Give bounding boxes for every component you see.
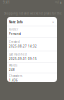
staticText: 2025-08-27 14:32 <box>9 45 37 48</box>
staticText: Characters <box>9 74 22 78</box>
staticText: 2025-09-01 09:15 <box>9 57 37 61</box>
staticText: Folder <box>9 28 18 31</box>
staticText: 1,436 <box>9 79 18 82</box>
staticText: ••ıl ▮ <box>55 1 61 4</box>
staticText: Words <box>9 64 17 67</box>
staticText: Personal <box>9 32 21 36</box>
staticText: 9:41 <box>3 1 10 4</box>
staticText: Note Info <box>9 20 23 24</box>
staticText: Last modified <box>9 53 27 56</box>
staticText: 248 <box>9 68 15 72</box>
staticText: Created <box>9 40 20 44</box>
staticText: Shopping list and weekend plans for the <box>4 12 62 15</box>
button[interactable]: Close <box>51 20 55 24</box>
staticText: ✕ <box>52 21 54 24</box>
